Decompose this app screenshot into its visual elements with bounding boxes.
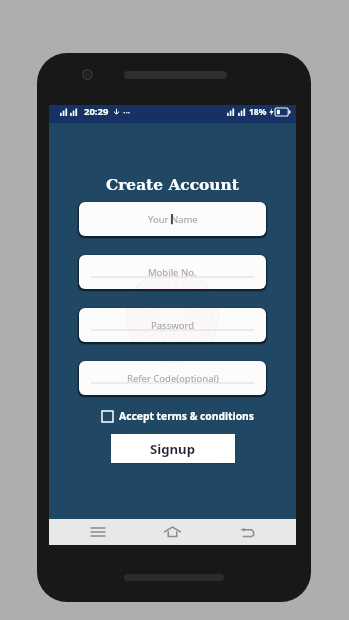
button[interactable]: Back — [230, 519, 264, 545]
staticText: Signup — [150, 440, 196, 458]
staticText: Refer Code(optional) — [127, 372, 219, 385]
button[interactable]: Your Name — [79, 202, 266, 236]
button[interactable]: Recent apps — [81, 519, 115, 545]
staticText: Password — [151, 319, 194, 332]
staticText: Accept terms & conditions — [119, 409, 254, 423]
staticText: Your Name — [148, 213, 198, 226]
button[interactable]: Password — [79, 308, 266, 342]
staticText: 20:29 — [84, 105, 109, 118]
staticText: Create Account — [106, 176, 239, 194]
button[interactable]: Home — [155, 519, 189, 545]
button[interactable]: Mobile No. — [79, 255, 266, 289]
button[interactable]: Signup — [111, 434, 235, 463]
staticText: 18% — [249, 106, 267, 118]
staticText: Mobile No. — [148, 266, 197, 279]
staticText: ··· — [123, 106, 131, 118]
button[interactable]: Accept terms & conditions — [102, 409, 254, 423]
button[interactable]: Refer Code(optional) — [79, 361, 266, 395]
